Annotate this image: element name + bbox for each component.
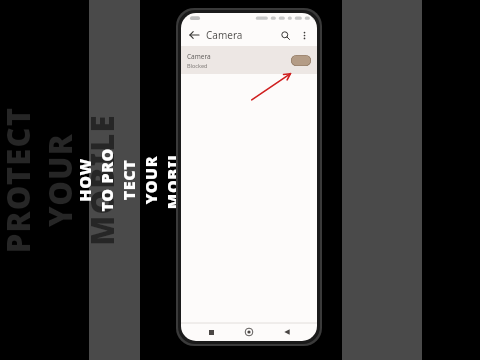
button[interactable]: Back (186, 27, 202, 43)
staticText: HOW TO PROTECT YOUR MOBILE (0, 75, 123, 285)
button[interactable]: Recent apps (203, 324, 219, 340)
staticText: HOW TO PROTECT YOUR MOBILE (74, 148, 206, 212)
staticText: Camera (206, 28, 243, 42)
staticText: Camera (187, 52, 211, 61)
button[interactable]: Camera (181, 46, 317, 74)
button[interactable]: More options (296, 27, 312, 43)
button[interactable]: Home (241, 324, 257, 340)
staticText: Blocked (187, 62, 208, 69)
button[interactable]: Search (277, 27, 293, 43)
button[interactable]: Back (279, 324, 295, 340)
button[interactable]: Camera access toggle (291, 55, 311, 66)
